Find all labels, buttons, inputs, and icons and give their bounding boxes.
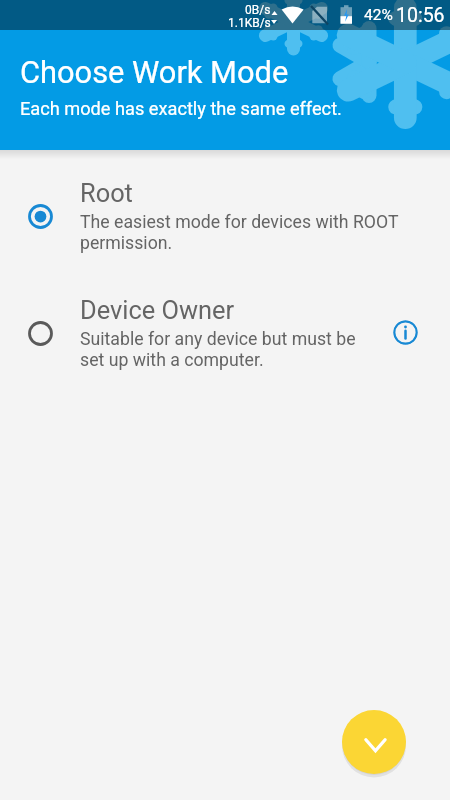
- staticText: 42%: [364, 6, 393, 24]
- button[interactable]: Confirm: [342, 710, 406, 774]
- staticText: Each mode has exactly the same effect.: [20, 98, 342, 119]
- staticText: Suitable for any device but must be set …: [80, 329, 356, 370]
- staticText: Choose Work Mode: [20, 54, 289, 90]
- staticText: Root: [80, 178, 133, 208]
- staticText: Device Owner: [80, 295, 235, 325]
- button[interactable]: Info: [393, 320, 418, 345]
- staticText: 10:56: [396, 4, 445, 27]
- staticText: 0B/s: [245, 3, 271, 17]
- staticText: The easiest mode for devices with ROOT p…: [80, 212, 399, 253]
- button[interactable]: Device Owner: [0, 295, 450, 403]
- staticText: 1.1KB/s: [228, 16, 271, 30]
- button[interactable]: Root: [0, 178, 450, 286]
